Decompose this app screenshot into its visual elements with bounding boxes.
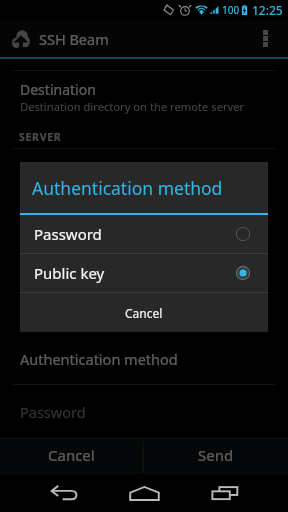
button[interactable]: Home [114, 474, 174, 512]
staticText: Authentication method [32, 176, 223, 200]
button[interactable]: Send [144, 439, 288, 474]
staticText: Cancel [48, 445, 95, 465]
staticText: Destination directory on the remote serv… [20, 99, 245, 114]
staticText: 100 [222, 3, 240, 17]
staticText: Authentication method [20, 349, 178, 369]
button[interactable]: Back [34, 474, 94, 512]
button[interactable]: Cancel [20, 293, 268, 332]
button[interactable]: Cancel [0, 439, 143, 474]
button[interactable]: Recent apps [195, 474, 255, 512]
staticText: Cancel [125, 305, 163, 321]
staticText: Send [198, 445, 234, 465]
staticText: Destination [20, 80, 96, 99]
button[interactable]: Password [20, 215, 268, 253]
staticText: SERVER [19, 130, 62, 144]
staticText: SSH Beam [39, 29, 109, 49]
staticText: Public key [34, 263, 105, 283]
button[interactable]: Password [0, 385, 288, 431]
button[interactable]: Destination [0, 71, 288, 117]
staticText: Password [34, 224, 102, 244]
button[interactable]: More options [252, 20, 288, 57]
button[interactable]: Authentication method [0, 338, 288, 384]
staticText: 12:25 [252, 2, 283, 18]
staticText: Password [20, 402, 86, 422]
button[interactable]: Public key [20, 254, 268, 292]
